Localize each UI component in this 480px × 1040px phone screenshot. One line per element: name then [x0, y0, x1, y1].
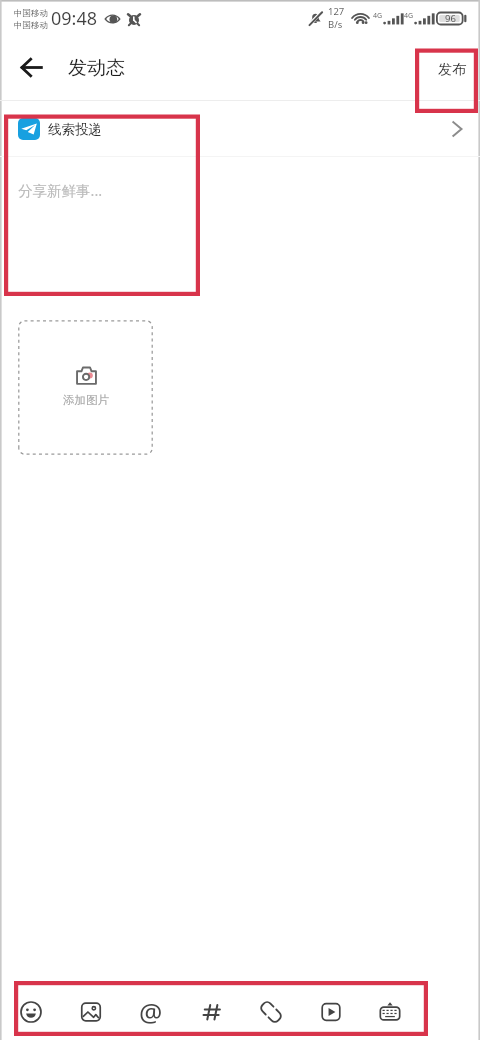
button[interactable]: Link	[247, 990, 295, 1034]
staticText: 中国移动	[14, 20, 48, 31]
button[interactable]: 线索投递	[0, 102, 480, 156]
button[interactable]: 发布	[423, 46, 477, 92]
staticText: @	[139, 994, 163, 1029]
staticText: 线索投递	[48, 121, 102, 138]
staticText: 中国移动	[14, 8, 48, 19]
staticText: 4G	[373, 11, 383, 21]
button[interactable]: Keyboard	[366, 990, 414, 1034]
staticText: B/s	[328, 18, 343, 31]
staticText: 发布	[438, 61, 466, 79]
button[interactable]: Add image	[18, 320, 153, 455]
staticText: 分享新鲜事...	[18, 180, 103, 200]
staticText: 4G	[404, 11, 414, 21]
button[interactable]: Image	[67, 990, 115, 1034]
button[interactable]: Video	[307, 990, 355, 1034]
staticText: 发动态	[68, 56, 125, 80]
staticText: 添加图片	[63, 393, 109, 407]
button[interactable]: Emoji	[7, 990, 55, 1034]
button[interactable]: Mention	[127, 990, 175, 1034]
button[interactable]: Back	[9, 45, 53, 89]
staticText: 09:48	[51, 6, 98, 31]
staticText: 127	[328, 5, 345, 18]
staticText: 96	[445, 12, 456, 25]
button[interactable]: Topic	[187, 990, 235, 1034]
